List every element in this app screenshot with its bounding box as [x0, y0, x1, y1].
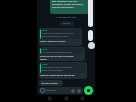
staticText: Wow if your feet don't touch the	[42, 32, 74, 35]
staticText: You definitely need doctor, and	[42, 51, 73, 54]
button[interactable]: Anna	[39, 62, 87, 79]
staticText: Anna	[42, 48, 48, 51]
staticText: ground doesn't hurt, right?	[42, 35, 69, 38]
button[interactable]: Resend	[59, 21, 74, 26]
staticText: Best massage in the area	[52, 0, 78, 3]
button[interactable]: Scroll to bottom	[88, 42, 95, 49]
button[interactable]: Recents	[46, 95, 53, 102]
button[interactable]: Anna	[39, 47, 85, 61]
staticText: doctor	[40, 58, 47, 60]
staticText: Resend	[63, 22, 71, 25]
staticText: pleasure guaranteed!	[42, 69, 64, 72]
button[interactable]: Best massage in the area	[50, 0, 89, 14]
button[interactable]: Home	[63, 95, 70, 102]
staticText: pleasure guaranteed!	[52, 6, 74, 9]
button[interactable]: Back	[79, 95, 86, 102]
staticText: 3 messages not sent	[56, 16, 77, 19]
staticText: Hahaha I would love to see you do	[40, 74, 75, 77]
staticText: You are so funny	[41, 82, 58, 85]
button[interactable]: You are so funny	[39, 80, 63, 86]
staticText: Would be nice to have a personal	[40, 55, 74, 58]
staticText: Message	[46, 89, 56, 92]
staticText: What u gonna do ?? haha	[40, 40, 66, 43]
staticText: Specialized in deep massaging,	[52, 3, 84, 6]
staticText: Anna	[42, 29, 48, 32]
staticText: Specialized in deep massaging,	[42, 66, 73, 69]
staticText: Anna	[42, 63, 48, 66]
button[interactable]: Voice message	[84, 86, 93, 95]
button[interactable]: Anna	[39, 28, 82, 46]
button[interactable]: Message	[39, 87, 83, 94]
